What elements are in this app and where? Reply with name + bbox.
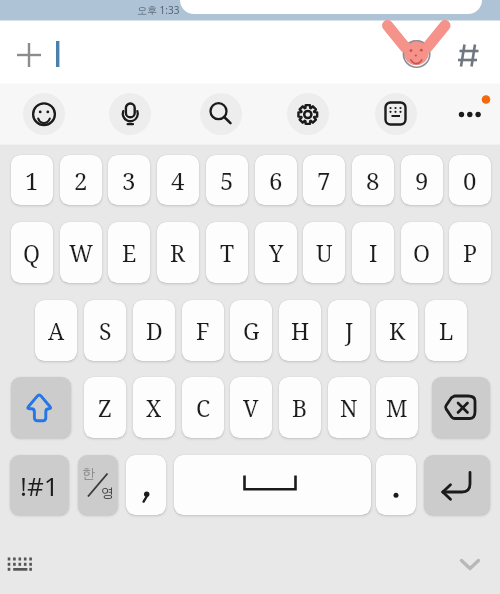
staticText: E <box>122 237 137 268</box>
button[interactable]: G <box>230 300 272 361</box>
staticText: P <box>463 237 477 268</box>
button[interactable]: 0 <box>449 155 491 205</box>
staticText: 6 <box>269 164 283 197</box>
button[interactable] <box>78 455 118 515</box>
staticText: 5 <box>220 164 234 197</box>
staticText: 4 <box>171 164 185 197</box>
button[interactable]: X <box>133 377 175 438</box>
staticText: X <box>146 392 162 423</box>
button[interactable]: Y <box>255 222 297 283</box>
staticText: C <box>196 392 211 423</box>
button[interactable]: 3 <box>108 155 150 205</box>
button[interactable]: N <box>328 377 370 438</box>
staticText: W <box>69 237 94 268</box>
staticText: 0 <box>463 164 477 197</box>
button[interactable] <box>287 93 329 135</box>
button[interactable]: 8 <box>352 155 394 205</box>
button[interactable]: M <box>376 377 418 438</box>
staticText: 오후 1:33 <box>137 3 180 17</box>
staticText: 영 <box>101 484 114 500</box>
button[interactable]: J <box>328 300 370 361</box>
staticText: S <box>99 315 112 346</box>
staticText: R <box>170 237 186 268</box>
button[interactable]: Z <box>84 377 126 438</box>
staticText: 3 <box>122 164 136 197</box>
staticText: J <box>345 315 354 346</box>
staticText: V <box>243 392 259 423</box>
staticText: !#1 <box>20 468 59 503</box>
staticText: D <box>146 315 163 346</box>
staticText: I <box>369 237 378 268</box>
button[interactable]: F <box>182 300 224 361</box>
button[interactable] <box>10 36 48 74</box>
button[interactable] <box>174 455 371 515</box>
button[interactable] <box>432 377 490 438</box>
button[interactable] <box>126 455 166 515</box>
button[interactable] <box>376 455 416 515</box>
button[interactable] <box>398 36 436 72</box>
staticText: 7 <box>317 164 331 197</box>
button[interactable] <box>109 93 151 135</box>
button[interactable]: C <box>182 377 224 438</box>
staticText: U <box>316 237 333 268</box>
button[interactable]: 4 <box>157 155 199 205</box>
staticText: 9 <box>415 164 429 197</box>
button[interactable] <box>452 550 488 580</box>
button[interactable]: U <box>303 222 345 283</box>
staticText: K <box>389 315 406 346</box>
button[interactable]: !#1 <box>10 455 69 515</box>
staticText: B <box>292 392 308 423</box>
button[interactable]: 7 <box>303 155 345 205</box>
button[interactable]: L <box>425 300 467 361</box>
button[interactable]: R <box>157 222 199 283</box>
button[interactable]: 2 <box>60 155 102 205</box>
button[interactable]: A <box>35 300 77 361</box>
staticText: F <box>196 315 210 346</box>
staticText: G <box>243 315 260 346</box>
button[interactable]: Q <box>11 222 53 283</box>
button[interactable]: O <box>401 222 443 283</box>
button[interactable] <box>23 93 65 135</box>
button[interactable] <box>424 455 490 515</box>
button[interactable]: 1 <box>11 155 53 205</box>
staticText: 8 <box>366 164 380 197</box>
button[interactable]: 6 <box>255 155 297 205</box>
button[interactable]: T <box>206 222 248 283</box>
button[interactable] <box>2 550 38 580</box>
button[interactable]: D <box>133 300 175 361</box>
staticText: Y <box>269 237 284 268</box>
button[interactable]: S <box>84 300 126 361</box>
button[interactable] <box>451 38 485 72</box>
staticText: Q <box>23 237 41 268</box>
button[interactable]: K <box>376 300 418 361</box>
button[interactable]: I <box>352 222 394 283</box>
button[interactable]: H <box>279 300 321 361</box>
staticText: 1 <box>25 164 39 197</box>
button[interactable] <box>375 93 417 135</box>
staticText: H <box>291 315 310 346</box>
button[interactable]: E <box>108 222 150 283</box>
staticText: 2 <box>74 164 88 197</box>
staticText: M <box>386 392 408 423</box>
button[interactable] <box>11 377 71 438</box>
button[interactable] <box>452 96 488 132</box>
staticText: A <box>48 315 65 346</box>
staticText: Z <box>98 392 112 423</box>
staticText: 한 <box>82 465 95 481</box>
button[interactable]: 5 <box>206 155 248 205</box>
button[interactable]: P <box>449 222 491 283</box>
staticText: O <box>413 237 431 268</box>
staticText: L <box>439 315 454 346</box>
staticText: N <box>340 392 358 423</box>
button[interactable]: W <box>60 222 102 283</box>
button[interactable]: B <box>279 377 321 438</box>
button[interactable]: V <box>230 377 272 438</box>
staticText: T <box>220 237 235 268</box>
button[interactable] <box>200 93 242 135</box>
button[interactable]: 9 <box>401 155 443 205</box>
